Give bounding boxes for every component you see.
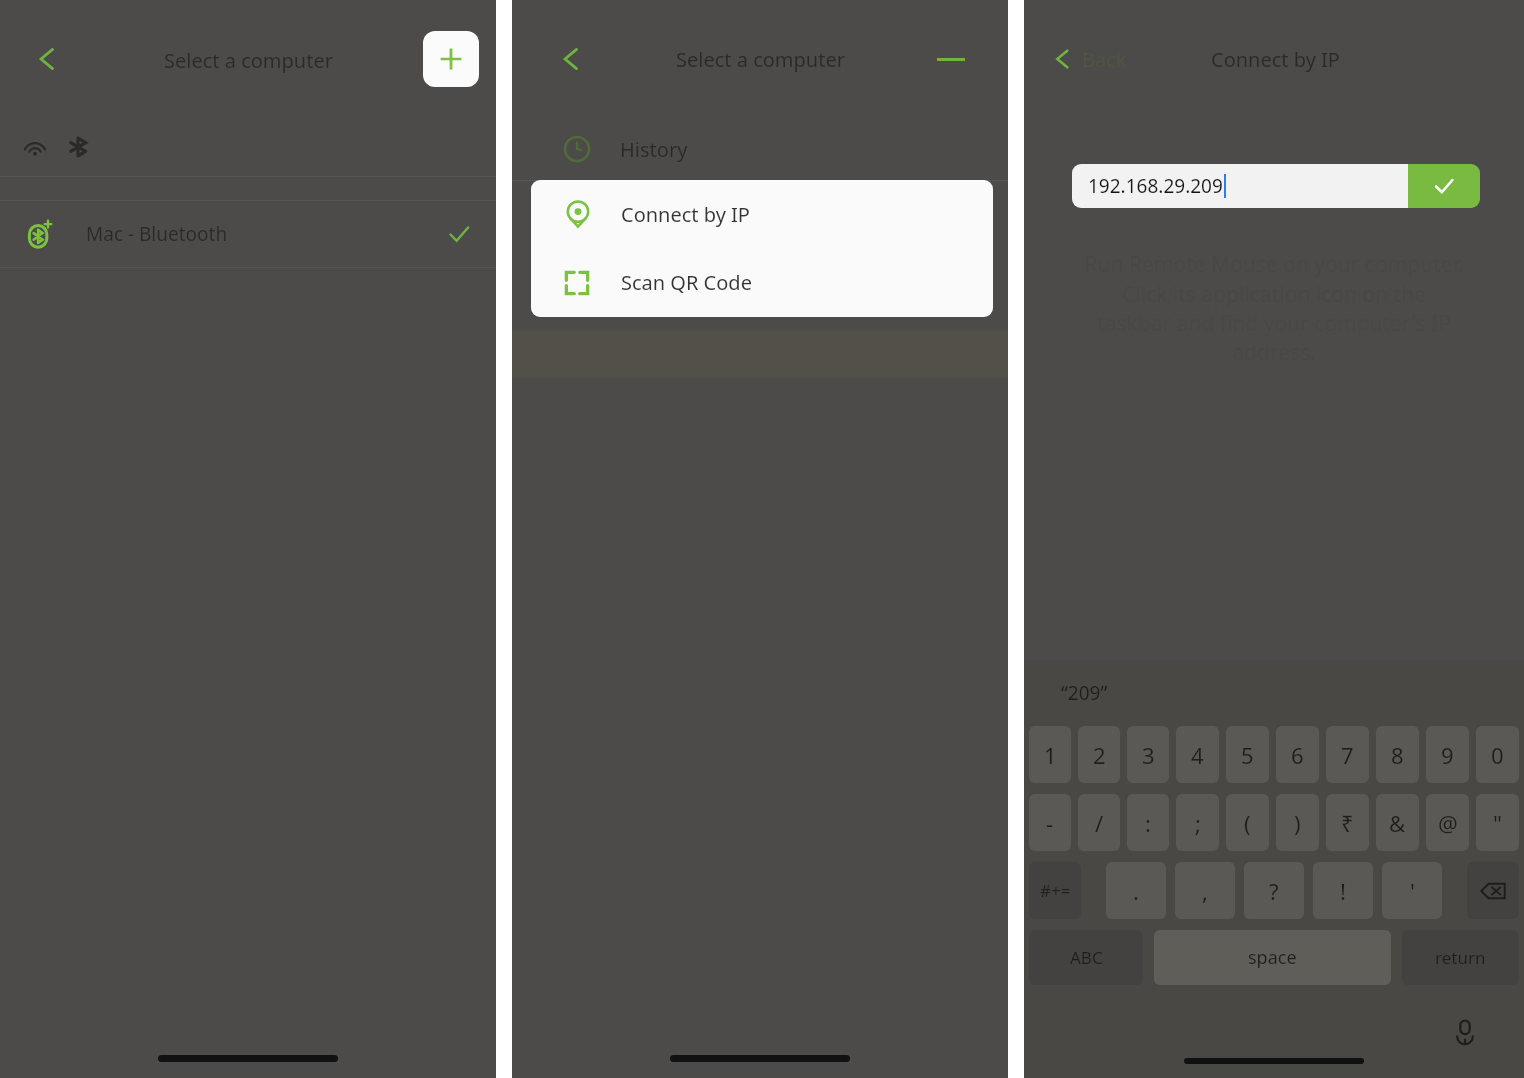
button[interactable]: 7 [1326,726,1369,783]
button[interactable]: Back [1040,32,1133,86]
button[interactable]: - [1029,794,1071,851]
staticText: History [620,136,688,163]
button[interactable]: & [1376,794,1419,851]
staticText: 1 [1044,740,1057,770]
button[interactable]: ! [1313,862,1373,919]
staticText: 6 [1291,740,1304,770]
button[interactable]: 0 [1476,726,1519,783]
staticText: Connect by IP [1211,46,1340,73]
button[interactable]: ( [1226,794,1269,851]
button[interactable]: 9 [1426,726,1469,783]
staticText: 0 [1491,740,1504,770]
button[interactable]: 1 [1029,726,1071,783]
button[interactable]: ₹ [1326,794,1369,851]
button[interactable]: History [512,118,1008,180]
staticText: ! [1340,876,1346,906]
button[interactable]: 8 [1376,726,1419,783]
button[interactable]: Collapse [926,34,976,84]
button[interactable]: 5 [1226,726,1269,783]
button[interactable]: : [1127,794,1169,851]
staticText: ' [1410,876,1415,906]
staticText: ₹ [1341,808,1354,838]
button[interactable]: Mac - Bluetooth [0,201,496,267]
staticText: : [1145,808,1151,838]
staticText: - [1046,808,1054,838]
button[interactable]: Backspace [1467,862,1519,919]
button[interactable]: Connect by IP [531,180,993,248]
button[interactable]: 2 [1078,726,1120,783]
staticText: Scan QR Code [621,269,752,296]
staticText: @ [1438,808,1458,838]
staticText: return [1435,946,1486,969]
button[interactable]: 3 [1127,726,1169,783]
button[interactable]: space [1154,930,1391,985]
button[interactable]: " [1476,794,1519,851]
staticText: 2 [1093,740,1106,770]
button[interactable]: 4 [1176,726,1219,783]
staticText: #+= [1040,879,1071,902]
staticText: . [1133,876,1139,906]
staticText: Back [1082,46,1127,73]
button[interactable]: Confirm [1408,164,1480,208]
staticText: 8 [1391,740,1404,770]
button[interactable]: #+= [1029,862,1081,919]
staticText: 4 [1191,740,1204,770]
staticText: 7 [1341,740,1354,770]
button[interactable]: Back [14,30,72,88]
staticText: & [1389,808,1406,838]
staticText: , [1202,876,1208,906]
staticText: “209” [1061,680,1108,706]
staticText: ? [1269,876,1279,906]
staticText: Select a computer [164,47,333,74]
staticText: ( [1244,808,1251,838]
staticText: Mac - Bluetooth [86,221,228,247]
button[interactable]: / [1078,794,1120,851]
staticText: ; [1195,808,1201,838]
staticText: space [1248,945,1297,970]
button[interactable]: ABC [1029,930,1143,985]
staticText: 3 [1142,740,1155,770]
button[interactable]: Dictate [1444,1011,1486,1053]
button[interactable]: 192.168.29.209 [1072,164,1408,208]
button[interactable]: @ [1426,794,1469,851]
staticText: Connect by IP [621,201,750,228]
button[interactable]: return [1402,930,1519,985]
staticText: 5 [1241,740,1254,770]
button[interactable]: Back [540,32,594,86]
button[interactable]: Scan QR Code [531,248,993,317]
staticText: 9 [1441,740,1454,770]
staticText: ) [1294,808,1301,838]
button[interactable]: ) [1276,794,1319,851]
button[interactable]: ? [1244,862,1304,919]
button[interactable]: 6 [1276,726,1319,783]
staticText: Select a computer [676,46,845,73]
staticText: / [1095,808,1104,838]
button[interactable]: , [1175,862,1235,919]
staticText: 192.168.29.209 [1088,173,1223,199]
staticText: ABC [1070,946,1103,969]
button[interactable]: Add computer [423,31,479,87]
staticText: " [1493,808,1502,838]
button[interactable]: ; [1176,794,1219,851]
